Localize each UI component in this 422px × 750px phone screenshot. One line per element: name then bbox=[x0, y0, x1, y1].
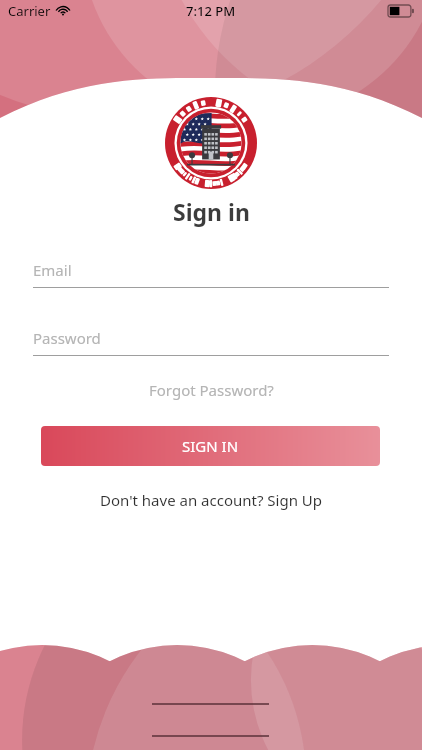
staticText: 7:12 PM bbox=[186, 2, 236, 20]
button[interactable]: Don't have an account? Sign Up bbox=[92, 487, 331, 513]
staticText: Sign in bbox=[173, 196, 250, 227]
button[interactable]: Password bbox=[33, 328, 389, 349]
button[interactable]: SIGN IN bbox=[41, 426, 380, 466]
button[interactable]: Forgot Password? bbox=[141, 377, 282, 403]
button[interactable]: Email bbox=[33, 260, 389, 281]
staticText: Carrier bbox=[8, 2, 51, 20]
staticText: Don't have an account? Sign Up bbox=[100, 490, 323, 510]
staticText: Password bbox=[33, 328, 101, 348]
staticText: Forgot Password? bbox=[149, 380, 274, 400]
staticText: Email bbox=[33, 260, 72, 280]
staticText: SIGN IN bbox=[182, 436, 239, 456]
